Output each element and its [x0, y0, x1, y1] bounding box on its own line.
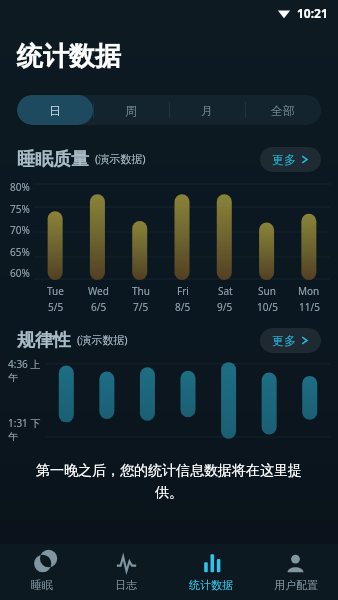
staticText: 10:21 [297, 5, 328, 21]
staticText: 75% [10, 202, 30, 216]
staticText: 4:36 上午 [8, 357, 46, 384]
button[interactable]: 全部 [245, 95, 321, 125]
staticText: 80% [10, 180, 30, 194]
staticText: Fri [177, 284, 189, 298]
staticText: 规律性 [17, 329, 71, 352]
staticText: (演示数据) [95, 151, 146, 166]
button[interactable]: 周 [93, 95, 169, 125]
staticText: Tue [47, 284, 64, 298]
staticText: 6/5 [91, 300, 107, 314]
staticText: 月 [201, 103, 213, 118]
button[interactable]: 日 [17, 95, 93, 125]
button[interactable]: 月 [169, 95, 245, 125]
staticText: 用户配置 [274, 578, 318, 592]
staticText: 全部 [271, 103, 295, 118]
staticText: 统计数据 [17, 40, 121, 73]
staticText: 睡眠 [31, 578, 53, 592]
button[interactable]: 统计数据 [168, 544, 253, 600]
other: 统计数据 [200, 553, 221, 574]
staticText: Wed [88, 284, 109, 298]
staticText: 7/5 [133, 300, 149, 314]
button[interactable]: 更多 [260, 328, 321, 353]
staticText: 更多 [272, 333, 296, 348]
staticText: Sun [258, 284, 276, 298]
button[interactable]: 用户配置 [253, 544, 338, 600]
staticText: 65% [10, 245, 30, 259]
staticText: 周 [125, 103, 137, 118]
button[interactable]: 日志 [84, 544, 168, 600]
staticText: 70% [10, 223, 30, 237]
staticText: 统计数据 [189, 578, 233, 592]
other: 睡眠 [32, 553, 53, 574]
button[interactable]: 睡眠 [0, 544, 84, 600]
staticText: 9/5 [217, 300, 233, 314]
staticText: 11/5 [299, 300, 320, 314]
staticText: 睡眠质量 [17, 148, 89, 171]
staticText: 1:31 下午 [8, 416, 46, 443]
staticText: (演示数据) [77, 332, 128, 347]
staticText: 更多 [272, 152, 296, 167]
staticText: Sat [218, 284, 233, 298]
other: 日志 [116, 553, 137, 574]
staticText: 第一晚之后，您的统计信息数据将在这里提供。 [24, 462, 314, 502]
button[interactable]: 更多 [260, 147, 321, 172]
staticText: 60% [10, 266, 30, 280]
staticText: 5/5 [48, 300, 64, 314]
staticText: 10/5 [257, 300, 278, 314]
other: 用户配置 [285, 553, 306, 574]
staticText: 日志 [115, 578, 137, 592]
staticText: Mon [298, 284, 320, 298]
staticText: Thu [132, 284, 150, 298]
staticText: 日 [49, 103, 61, 118]
staticText: 8/5 [175, 300, 191, 314]
